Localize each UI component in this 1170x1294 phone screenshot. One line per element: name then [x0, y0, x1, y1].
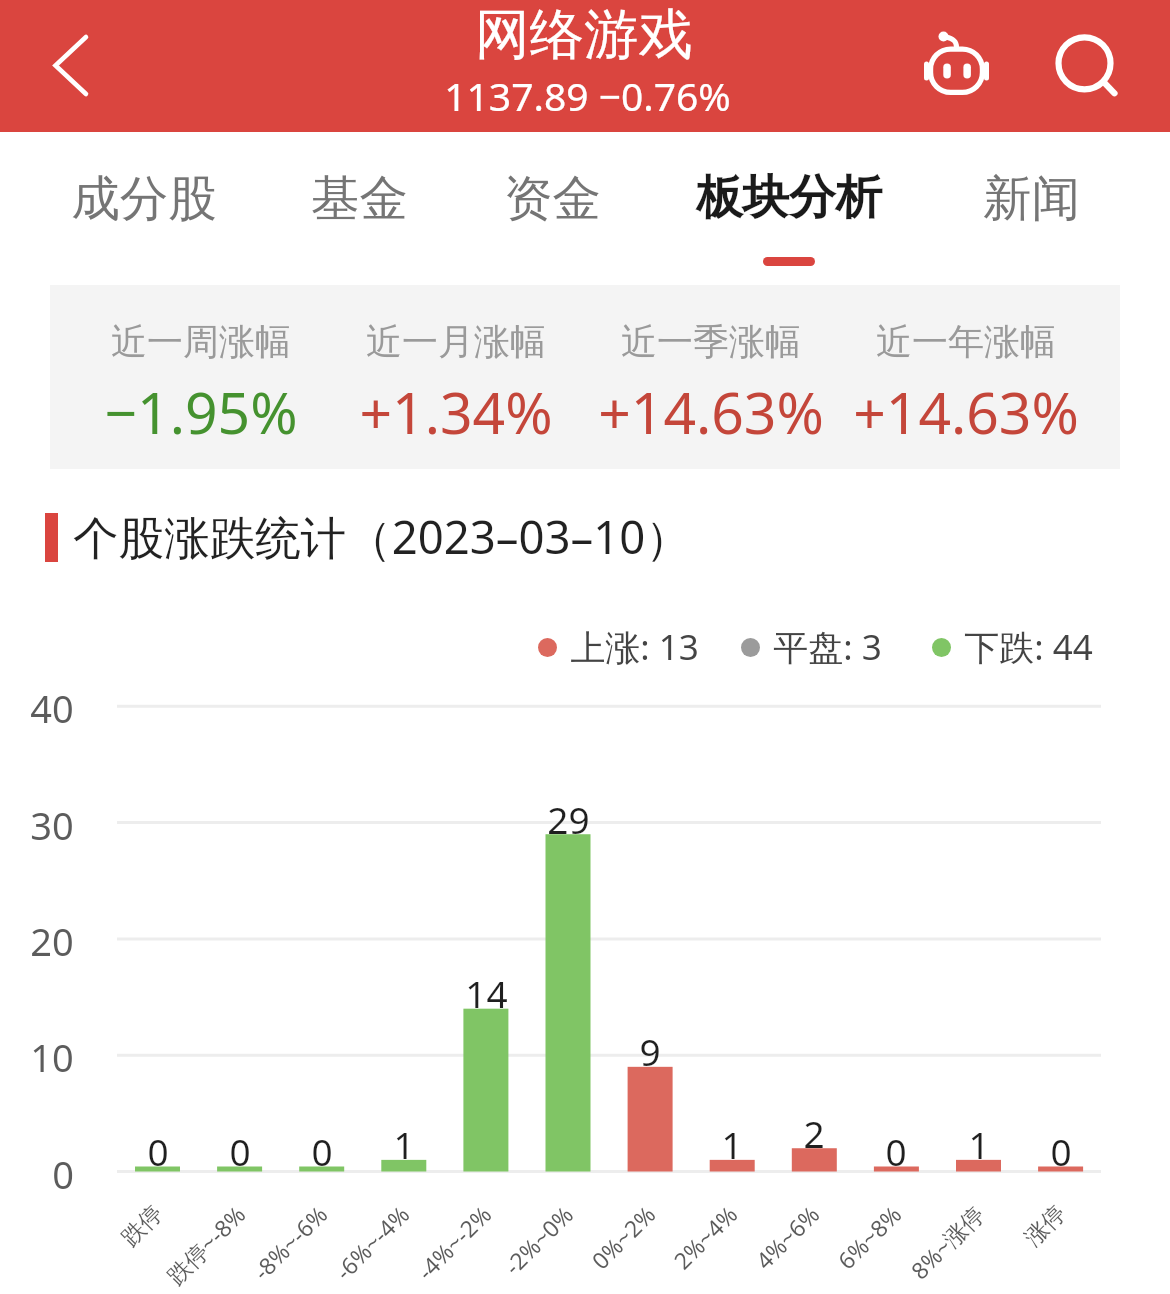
staticText: 涨停: [1019, 1199, 1072, 1252]
button[interactable]: AI assistant: [906, 16, 1006, 116]
staticText: 1: [968, 1119, 990, 1169]
staticText: 跌停: [116, 1199, 169, 1252]
staticText: 基金: [311, 168, 408, 229]
button[interactable]: Back: [20, 16, 120, 116]
staticText: 4%~6%: [748, 1198, 825, 1275]
staticText: 近一年涨幅: [876, 319, 1056, 364]
staticText: 下跌: 44: [964, 623, 1093, 671]
staticText: 29: [547, 794, 590, 844]
staticText: 6%~8%: [830, 1198, 907, 1275]
staticText: 1: [393, 1119, 415, 1169]
staticText: 9: [639, 1026, 661, 1076]
staticText: 近一周涨幅: [111, 319, 291, 364]
staticText: 1137.89 −0.76%: [444, 69, 731, 122]
staticText: 0: [147, 1126, 169, 1176]
button[interactable]: 新闻: [961, 158, 1101, 278]
staticText: 14: [465, 968, 508, 1018]
staticText: 0: [885, 1126, 907, 1176]
staticText: 20: [30, 915, 74, 967]
staticText: 个股涨跌统计（2023–03–10）: [73, 505, 691, 567]
staticText: 成分股: [71, 168, 217, 229]
staticText: +14.63%: [598, 373, 824, 451]
staticText: 近一月涨幅: [366, 319, 546, 364]
staticText: +1.34%: [359, 373, 553, 451]
staticText: 0: [311, 1126, 333, 1176]
button[interactable]: 资金: [482, 158, 622, 278]
staticText: 平盘: 3: [773, 623, 882, 671]
staticText: 10: [30, 1031, 74, 1083]
staticText: 0: [229, 1126, 251, 1176]
staticText: -4%~-2%: [410, 1198, 497, 1286]
button[interactable]: 板块分析: [671, 158, 907, 278]
staticText: 2%~4%: [666, 1198, 743, 1275]
button[interactable]: 基金: [289, 158, 429, 278]
staticText: +14.63%: [853, 373, 1079, 451]
staticText: 40: [30, 682, 74, 734]
staticText: 0: [1050, 1126, 1072, 1176]
staticText: 网络游戏: [475, 1, 693, 70]
staticText: 板块分析: [696, 168, 882, 227]
button[interactable]: 成分股: [50, 158, 238, 278]
staticText: 30: [30, 799, 74, 851]
staticText: 近一季涨幅: [621, 319, 801, 364]
staticText: 1: [721, 1119, 743, 1169]
staticText: 上涨: 13: [570, 623, 699, 671]
staticText: 8%~涨停: [903, 1198, 990, 1285]
staticText: 跌停~-8%: [159, 1198, 251, 1290]
button[interactable]: [50, 285, 1120, 469]
staticText: -8%~-6%: [246, 1198, 333, 1286]
staticText: -2%~0%: [497, 1198, 579, 1281]
staticText: −1.95%: [104, 373, 298, 451]
staticText: 0%~2%: [584, 1198, 661, 1275]
staticText: 新闻: [983, 168, 1080, 229]
staticText: 0: [52, 1148, 74, 1200]
staticText: 2: [803, 1108, 825, 1158]
staticText: 资金: [504, 168, 601, 229]
staticText: -6%~-4%: [328, 1198, 415, 1286]
button[interactable]: Search: [1034, 13, 1134, 113]
